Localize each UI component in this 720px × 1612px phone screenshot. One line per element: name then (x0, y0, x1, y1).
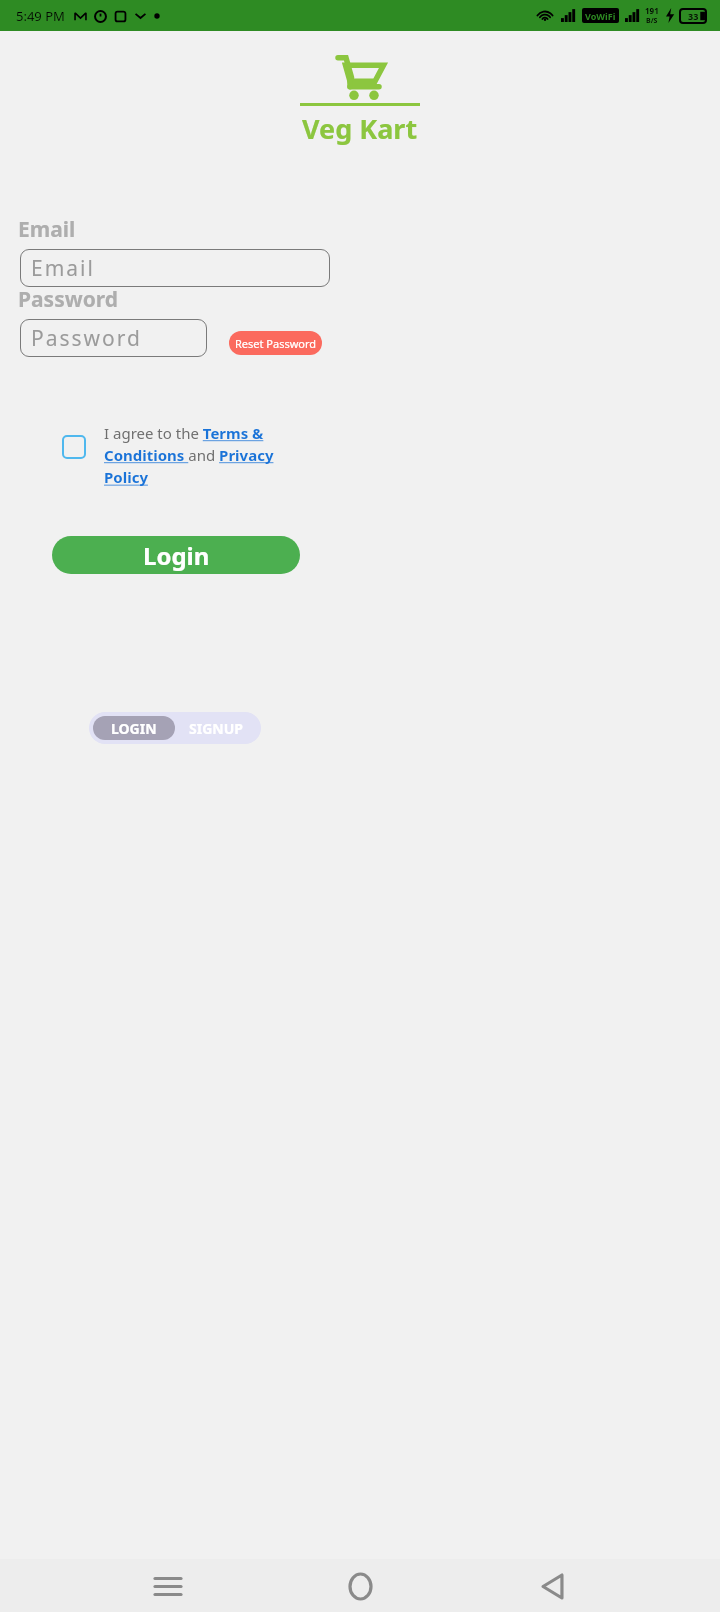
staticText: Login (143, 539, 210, 572)
staticText: 191 (645, 5, 659, 16)
button[interactable]: Home (336, 1562, 384, 1610)
staticText: I agree to the Terms & Conditions and Pr… (104, 423, 312, 488)
staticText: Email (31, 254, 95, 283)
button[interactable]: Agree to terms checkbox (62, 435, 86, 459)
staticText: Password (31, 324, 142, 353)
button[interactable]: I agree to the Terms & Conditions and Pr… (104, 423, 312, 488)
staticText: 33 (688, 10, 699, 22)
button[interactable]: Reset Password (229, 331, 322, 355)
staticText: Veg Kart (302, 110, 418, 147)
button[interactable]: Back (528, 1562, 576, 1610)
button[interactable]: SIGNUP (175, 716, 257, 740)
button[interactable]: Email (20, 249, 330, 287)
button[interactable]: LOGIN (93, 716, 175, 740)
staticText: LOGIN (111, 719, 157, 738)
button[interactable]: Recent apps (144, 1562, 192, 1610)
button[interactable]: Login (52, 536, 300, 574)
staticText: Email (18, 215, 76, 244)
button[interactable]: Password (20, 319, 207, 357)
staticText: Reset Password (235, 336, 317, 351)
staticText: Password (18, 285, 119, 314)
staticText: 5:49 PM (16, 7, 65, 25)
staticText: SIGNUP (189, 719, 243, 738)
staticText: VoWiFi (585, 10, 616, 22)
staticText: B/S (646, 16, 658, 26)
